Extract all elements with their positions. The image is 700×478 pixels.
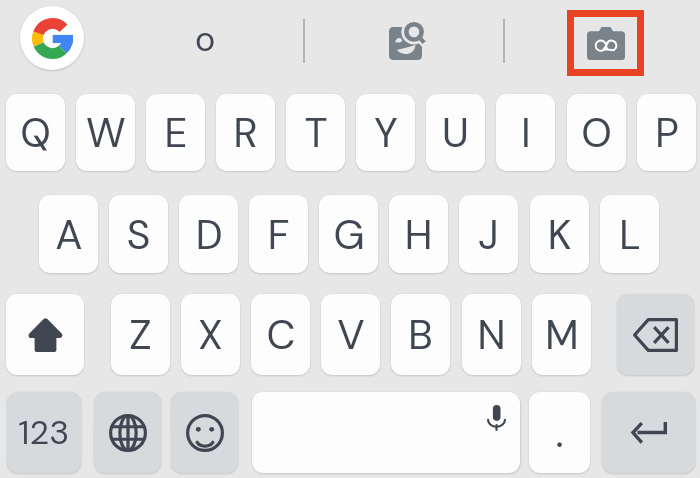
button[interactable]: Numbers and symbols <box>7 392 81 473</box>
button[interactable]: G <box>319 195 378 273</box>
button[interactable]: P <box>637 94 696 171</box>
button[interactable]: Camera <box>567 10 644 76</box>
button[interactable]: Shift <box>6 294 84 375</box>
button[interactable]: Space <box>252 392 520 473</box>
button[interactable]: K <box>530 195 589 273</box>
staticText: T <box>304 106 328 159</box>
staticText: A <box>55 208 83 261</box>
staticText: D <box>195 208 223 261</box>
button[interactable]: B <box>391 294 450 375</box>
button[interactable]: X <box>181 294 240 375</box>
staticText: X <box>198 308 223 361</box>
button[interactable]: N <box>462 294 521 375</box>
button[interactable]: W <box>76 94 135 171</box>
staticText: Y <box>374 106 398 159</box>
button[interactable]: . <box>529 392 590 473</box>
button[interactable]: Emoji <box>171 392 238 473</box>
button[interactable]: M <box>532 294 591 375</box>
button[interactable]: O <box>567 94 626 171</box>
button[interactable]: R <box>216 94 275 171</box>
staticText: I <box>521 106 531 159</box>
button[interactable]: L <box>600 195 659 273</box>
button[interactable]: S <box>109 195 168 273</box>
button[interactable]: o <box>175 6 235 72</box>
button[interactable]: Q <box>6 94 65 171</box>
button[interactable]: A <box>39 195 98 273</box>
button[interactable]: D <box>179 195 238 273</box>
button[interactable]: Change language <box>94 392 161 473</box>
staticText: H <box>404 208 433 261</box>
button[interactable]: Y <box>356 94 415 171</box>
staticText: K <box>547 208 572 261</box>
staticText: U <box>442 106 469 159</box>
staticText: O <box>581 106 612 159</box>
button[interactable]: I <box>496 94 555 171</box>
staticText: M <box>545 308 579 361</box>
staticText: W <box>86 106 126 159</box>
staticText: Z <box>129 308 152 361</box>
staticText: B <box>408 308 433 361</box>
staticText: C <box>266 308 296 361</box>
button[interactable]: U <box>426 94 485 171</box>
staticText: N <box>477 308 506 361</box>
button[interactable]: T <box>286 94 345 171</box>
staticText: F <box>267 208 290 261</box>
button[interactable]: V <box>321 294 380 375</box>
button[interactable]: Backspace <box>617 294 694 375</box>
staticText: V <box>337 308 365 361</box>
button[interactable]: E <box>146 94 205 171</box>
button[interactable]: H <box>389 195 448 273</box>
staticText: o <box>195 17 216 61</box>
staticText: L <box>619 208 641 261</box>
button[interactable]: Google <box>20 6 84 70</box>
button[interactable]: F <box>249 195 308 273</box>
staticText: S <box>126 208 151 261</box>
button[interactable]: Z <box>111 294 170 375</box>
button[interactable]: J <box>459 195 518 273</box>
staticText: Q <box>20 106 51 159</box>
staticText: . <box>555 406 564 459</box>
staticText: R <box>233 106 258 159</box>
staticText: E <box>164 106 188 159</box>
button[interactable]: Enter <box>602 392 695 473</box>
button[interactable]: Search with image <box>372 6 438 72</box>
staticText: G <box>333 208 365 261</box>
button[interactable]: C <box>251 294 310 375</box>
staticText: P <box>655 106 679 159</box>
staticText: J <box>478 208 499 261</box>
staticText: 123 <box>18 411 70 455</box>
